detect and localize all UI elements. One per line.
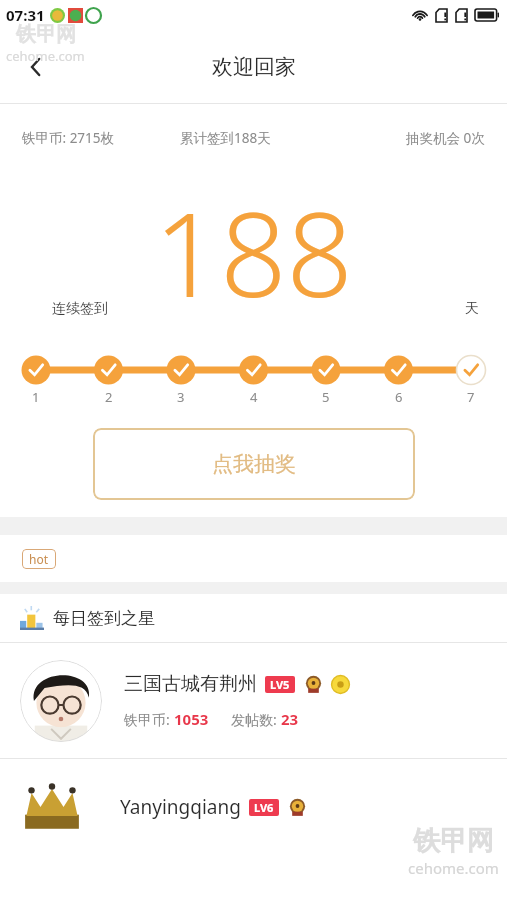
- staticText: 4: [250, 388, 258, 406]
- button[interactable]: 三国古城有荆州: [0, 643, 507, 758]
- button[interactable]: Yanyingqiang: [0, 759, 507, 874]
- staticText: 连续签到: [52, 300, 108, 318]
- button[interactable]: hot: [29, 551, 49, 567]
- staticText: 铁甲网: [16, 22, 76, 47]
- staticText: 天: [465, 300, 479, 318]
- staticText: 铁甲币: 2715枚: [22, 129, 115, 147]
- staticText: Yanyingqiang: [120, 794, 241, 820]
- staticText: 铁甲币:: [124, 710, 174, 729]
- staticText: 三国古城有荆州: [124, 672, 257, 696]
- staticText: cehome.com: [408, 858, 499, 878]
- staticText: 188: [154, 173, 353, 331]
- staticText: LV6: [254, 800, 274, 815]
- staticText: 发帖数:: [231, 710, 281, 729]
- staticText: 点我抽奖: [212, 451, 296, 477]
- staticText: 5: [322, 388, 330, 406]
- staticText: 抽奖机会 0次: [406, 129, 485, 147]
- staticText: 3: [177, 388, 185, 406]
- staticText: 累计签到188天: [180, 129, 271, 147]
- staticText: 23: [281, 709, 299, 729]
- staticText: cehome.com: [6, 47, 85, 65]
- staticText: 07:31: [6, 5, 45, 25]
- staticText: 7: [467, 388, 475, 406]
- staticText: 每日签到之星: [53, 608, 155, 629]
- staticText: hot: [29, 551, 49, 567]
- staticText: 1: [32, 388, 40, 406]
- button[interactable]: Back: [14, 45, 58, 89]
- staticText: 2: [105, 388, 113, 406]
- staticText: LV5: [270, 677, 290, 692]
- button[interactable]: 点我抽奖: [93, 428, 415, 500]
- staticText: 铁甲网: [413, 824, 494, 858]
- staticText: 1053: [174, 709, 209, 729]
- staticText: 6: [395, 388, 403, 406]
- staticText: 欢迎回家: [212, 54, 296, 80]
